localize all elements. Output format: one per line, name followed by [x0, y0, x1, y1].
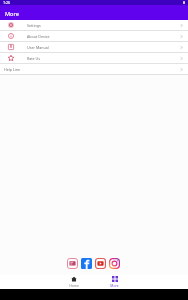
button[interactable]: About Device [0, 31, 188, 42]
button[interactable]: Website [66, 257, 78, 269]
button[interactable]: User Manual [0, 42, 188, 53]
staticText: Home [69, 283, 79, 288]
button[interactable]: Home [63, 276, 84, 288]
button[interactable]: Instagram [108, 257, 120, 269]
staticText: About Device [27, 34, 50, 39]
button[interactable]: More [104, 276, 125, 288]
button[interactable]: YouTube [94, 257, 106, 269]
staticText: Rate Us [27, 56, 41, 61]
staticText: 1:26 [3, 0, 11, 5]
button[interactable]: Facebook [80, 257, 92, 269]
staticText: More [110, 283, 119, 288]
button[interactable]: Help Line [0, 64, 188, 75]
staticText: User Manual [27, 45, 49, 50]
staticText: Settings [27, 23, 41, 28]
button[interactable]: Settings [0, 20, 188, 31]
button[interactable]: Rate Us [0, 53, 188, 64]
staticText: Help Line [4, 67, 21, 72]
staticText: More [5, 10, 19, 18]
